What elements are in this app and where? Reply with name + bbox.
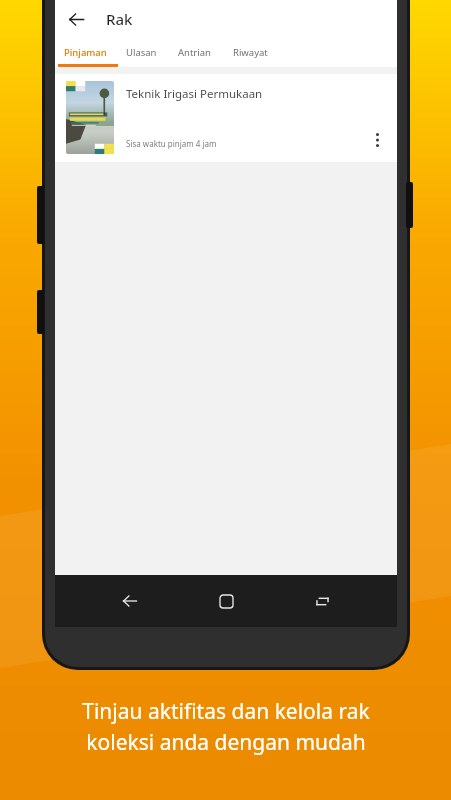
button[interactable]: Back [58,1,94,37]
button[interactable]: Back [109,580,151,622]
staticText: Tinjau aktifitas dan kelola rak koleksi … [82,697,370,756]
staticText: Pinjaman [64,46,107,59]
staticText: Sisa waktu pinjam 4 jam [126,138,217,149]
button[interactable]: Pinjaman [55,37,115,67]
button[interactable]: Home [205,580,247,622]
staticText: Antrian [178,46,211,59]
staticText: Riwayat [233,46,268,59]
staticText: Ulasan [126,46,157,59]
button[interactable]: Antrian [167,37,222,67]
button[interactable]: More options [362,125,392,155]
button[interactable]: Recent apps [301,580,343,622]
button[interactable]: Riwayat [222,37,278,67]
button[interactable]: Teknik Irigasi Permukaan [55,74,397,162]
staticText: Teknik Irigasi Permukaan [126,86,263,102]
button[interactable]: Ulasan [115,37,167,67]
staticText: Rak [106,9,133,29]
